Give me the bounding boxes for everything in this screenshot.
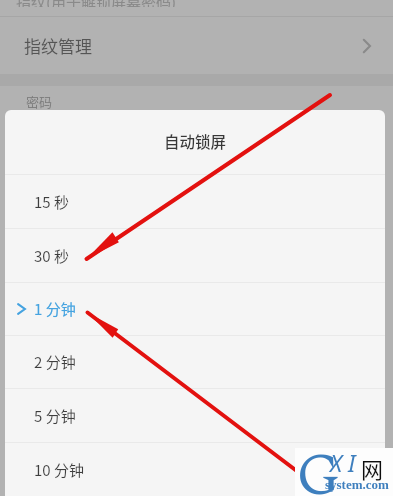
staticText: X I <box>330 447 356 478</box>
staticText: 1 分钟 <box>34 298 76 320</box>
staticText: 30 秒 <box>34 245 70 267</box>
button[interactable]: 指纹管理 <box>0 17 393 74</box>
staticText: 网 <box>361 452 384 484</box>
staticText: 自动锁屏 <box>164 130 227 152</box>
button[interactable]: 15 秒 <box>5 175 385 228</box>
staticText: 密码 <box>26 92 53 111</box>
staticText: 15 秒 <box>34 191 70 213</box>
staticText: 10 分钟 <box>34 459 85 481</box>
button[interactable]: 1 分钟 <box>5 283 385 335</box>
button[interactable]: 5 分钟 <box>5 389 385 442</box>
staticText: system.com <box>325 477 389 491</box>
staticText: 5 分钟 <box>34 405 76 427</box>
button[interactable]: 2 分钟 <box>5 336 385 388</box>
button[interactable]: 30 秒 <box>5 229 385 282</box>
button[interactable]: 10 分钟 <box>5 443 385 496</box>
staticText: G <box>296 433 341 496</box>
staticText: 指纹(用于解锁屏幕密码) <box>16 0 177 7</box>
staticText: 2 分钟 <box>34 351 76 373</box>
staticText: 指纹管理 <box>24 33 92 58</box>
